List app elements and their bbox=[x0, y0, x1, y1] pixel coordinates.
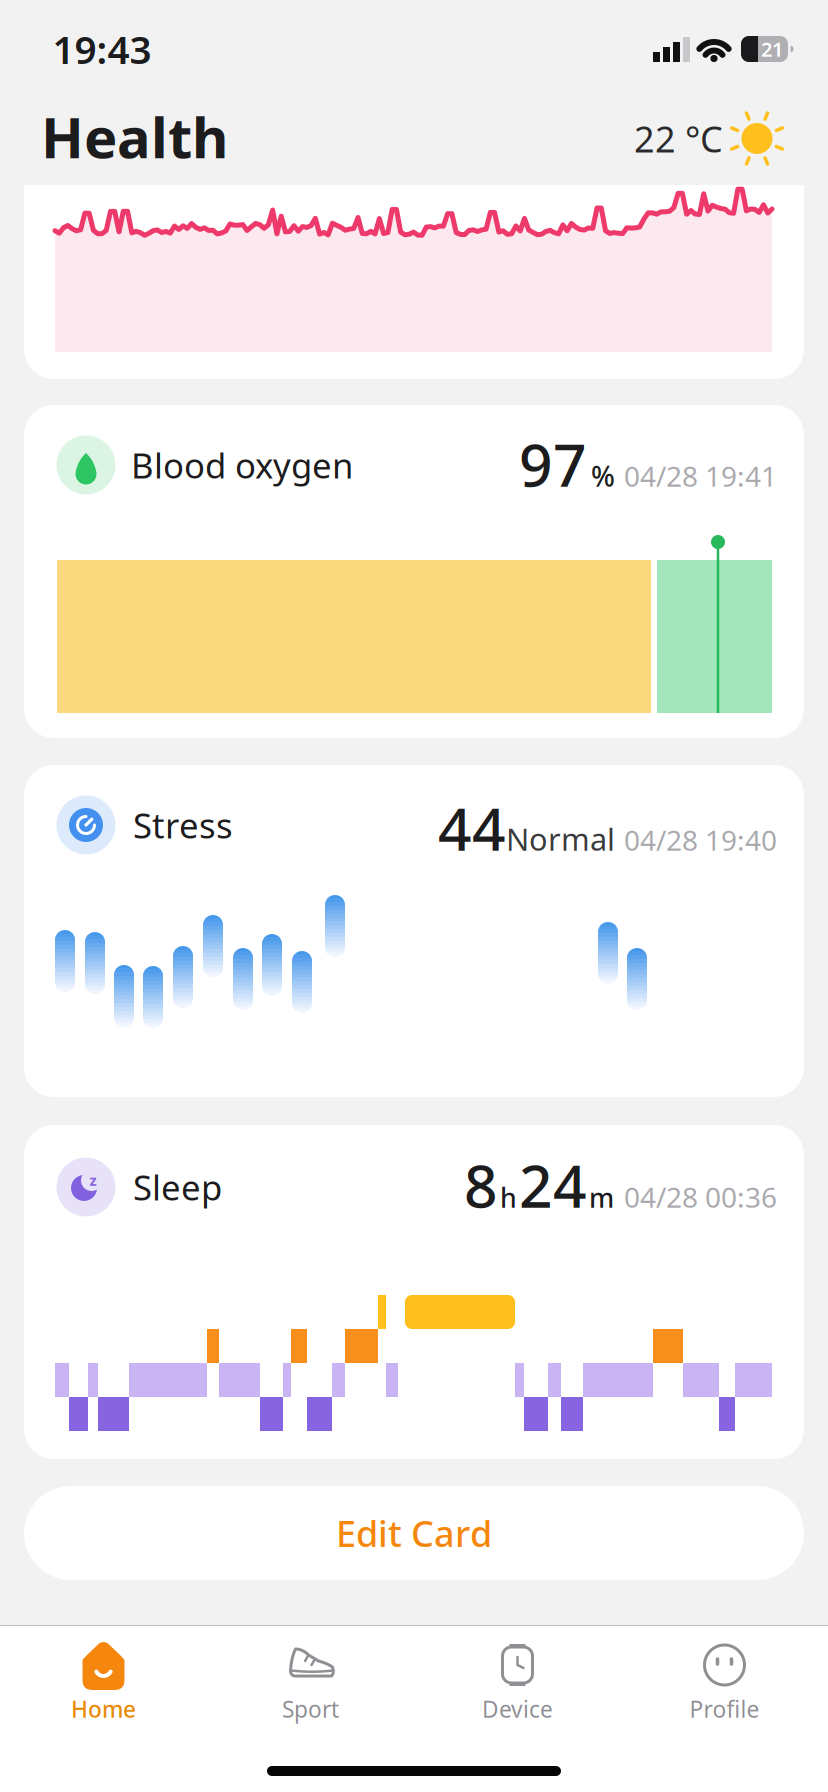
staticText: Sport bbox=[282, 1694, 339, 1724]
staticText: Sleep bbox=[133, 1164, 222, 1210]
button[interactable]: Home bbox=[0, 1625, 207, 1745]
staticText: 24 bbox=[519, 1146, 587, 1224]
button[interactable]: z bbox=[24, 1125, 804, 1459]
staticText: 21 bbox=[761, 36, 783, 62]
staticText: 22 °C bbox=[634, 115, 723, 162]
button[interactable]: Profile bbox=[621, 1625, 828, 1745]
staticText: 8 bbox=[464, 1146, 498, 1224]
button[interactable]: Blood oxygen bbox=[24, 405, 804, 738]
staticText: 97 bbox=[519, 425, 587, 503]
button[interactable]: Stress bbox=[24, 765, 804, 1097]
button[interactable] bbox=[24, 185, 804, 379]
staticText: Edit Card bbox=[336, 1509, 492, 1557]
staticText: 04/28 19:40 bbox=[624, 821, 777, 858]
staticText: Profile bbox=[689, 1694, 759, 1724]
button[interactable]: Edit Card bbox=[24, 1486, 804, 1580]
staticText: Normal bbox=[506, 818, 615, 859]
staticText: h bbox=[500, 1180, 517, 1215]
staticText: 19:43 bbox=[52, 23, 151, 75]
staticText: % bbox=[591, 457, 615, 494]
button[interactable]: Sport bbox=[207, 1625, 414, 1745]
button[interactable]: Device bbox=[414, 1625, 621, 1745]
staticText: 04/28 00:36 bbox=[624, 1178, 777, 1215]
staticText: m bbox=[589, 1180, 614, 1215]
staticText: Home bbox=[71, 1694, 136, 1724]
staticText: Health bbox=[41, 99, 228, 174]
staticText: Stress bbox=[133, 802, 233, 848]
staticText: 44 bbox=[438, 789, 506, 867]
staticText: Blood oxygen bbox=[131, 442, 353, 488]
staticText: 04/28 19:41 bbox=[624, 457, 777, 494]
staticText: z bbox=[89, 1170, 96, 1190]
staticText: Device bbox=[482, 1694, 553, 1724]
